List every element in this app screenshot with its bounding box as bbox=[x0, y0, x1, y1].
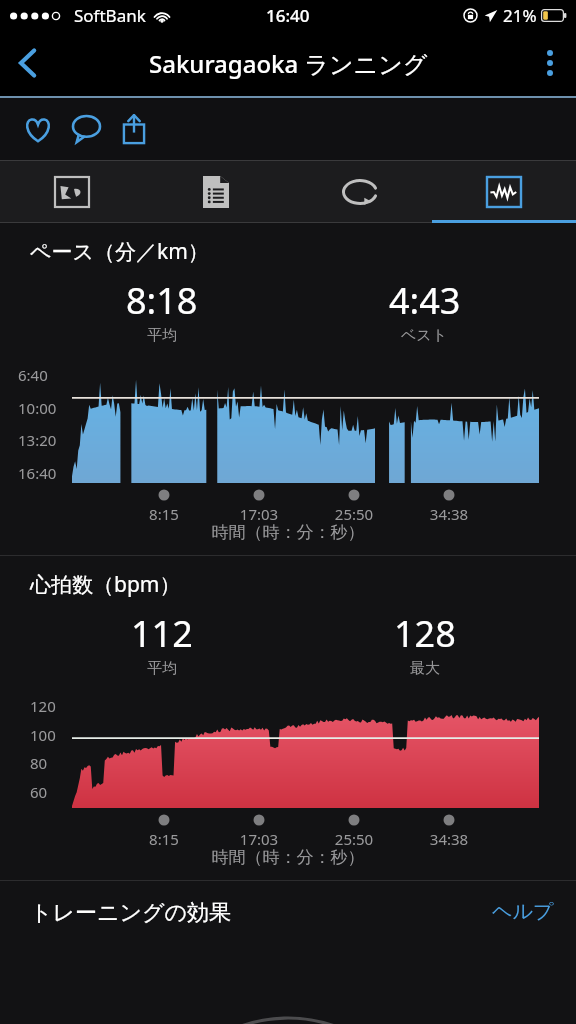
staticText: 17:03 bbox=[229, 504, 289, 524]
staticText: 25:50 bbox=[324, 504, 384, 524]
staticText: ペース（分／km） bbox=[30, 237, 209, 266]
staticText: 60 bbox=[30, 782, 48, 802]
staticText: 16:40 bbox=[266, 4, 310, 27]
staticText: 16:40 bbox=[18, 463, 57, 483]
button[interactable]: More options bbox=[524, 30, 576, 96]
staticText: 120 bbox=[30, 696, 56, 716]
staticText: 平均 bbox=[147, 659, 177, 678]
staticText: 80 bbox=[30, 753, 48, 773]
staticText: 21% bbox=[503, 4, 537, 27]
staticText: ベスト bbox=[401, 326, 448, 345]
staticText: Sakuragaoka ランニング bbox=[149, 47, 428, 80]
staticText: 8:15 bbox=[134, 504, 194, 524]
button[interactable]: Laps bbox=[288, 161, 432, 223]
staticText: 100 bbox=[30, 725, 56, 745]
staticText: 13:20 bbox=[18, 430, 57, 450]
staticText: 時間（時：分：秒） bbox=[0, 522, 576, 543]
button[interactable]: Share bbox=[110, 105, 158, 153]
staticText: 112 bbox=[131, 609, 193, 658]
staticText: 25:50 bbox=[324, 829, 384, 849]
staticText: 6:40 bbox=[18, 365, 48, 385]
button[interactable]: Back bbox=[0, 30, 56, 96]
staticText: 4:43 bbox=[389, 276, 461, 325]
staticText: 8:15 bbox=[134, 829, 194, 849]
button[interactable]: Comment bbox=[62, 105, 110, 153]
staticText: 34:38 bbox=[419, 829, 479, 849]
staticText: ヘルプ bbox=[492, 899, 554, 924]
staticText: 平均 bbox=[147, 326, 177, 345]
staticText: 34:38 bbox=[419, 504, 479, 524]
staticText: 心拍数（bpm） bbox=[30, 570, 181, 599]
staticText: SoftBank bbox=[74, 4, 146, 27]
staticText: 時間（時：分：秒） bbox=[0, 847, 576, 868]
button[interactable]: Charts bbox=[432, 161, 576, 223]
staticText: トレーニングの効果 bbox=[30, 899, 232, 927]
staticText: 17:03 bbox=[229, 829, 289, 849]
button[interactable]: Details bbox=[144, 161, 288, 223]
staticText: 128 bbox=[394, 609, 456, 658]
staticText: 8:18 bbox=[126, 276, 198, 325]
button[interactable]: Like bbox=[14, 105, 62, 153]
button[interactable]: Map bbox=[0, 161, 144, 223]
staticText: 10:00 bbox=[18, 398, 57, 418]
staticText: 最大 bbox=[410, 659, 440, 678]
button[interactable]: ヘルプ bbox=[484, 891, 562, 932]
